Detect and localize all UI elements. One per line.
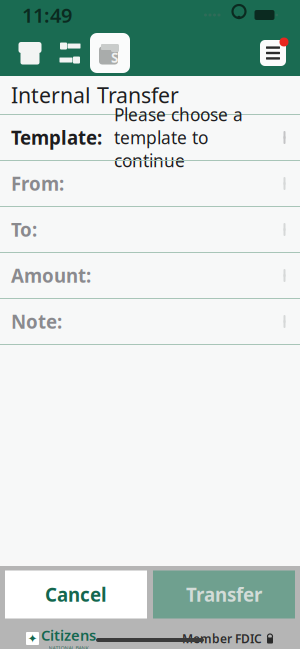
staticText: Amount: <box>11 263 91 288</box>
button[interactable]: To: <box>0 207 300 253</box>
staticText: ✦ <box>27 632 37 645</box>
button[interactable]: Transfers <box>50 33 90 73</box>
staticText: Note: <box>11 309 62 334</box>
staticText: To: <box>11 217 37 242</box>
button[interactable]: From: <box>0 161 300 207</box>
staticText: NATIONAL BANK <box>48 645 88 649</box>
button[interactable]: Amount: <box>0 253 300 299</box>
staticText: Transfer <box>186 582 262 607</box>
staticText: 11:49 <box>22 2 72 28</box>
button[interactable]: Internal Transfer <box>90 33 130 73</box>
staticText: Internal Transfer <box>11 81 179 109</box>
button[interactable]: Cancel <box>5 570 147 618</box>
button[interactable]: Template: <box>0 115 300 161</box>
button[interactable]: Home <box>10 33 50 73</box>
staticText: Please choose a template to continue <box>114 103 243 172</box>
staticText: Template: <box>11 125 102 150</box>
button[interactable]: Menu <box>256 36 290 70</box>
staticText: Citizens <box>41 625 96 645</box>
staticText: S <box>111 49 118 66</box>
button[interactable]: Transfer <box>153 570 295 618</box>
button[interactable]: Note: <box>0 299 300 345</box>
staticText: Cancel <box>45 582 107 607</box>
staticText: From: <box>11 171 64 196</box>
staticText: Member FDIC <box>182 630 262 646</box>
